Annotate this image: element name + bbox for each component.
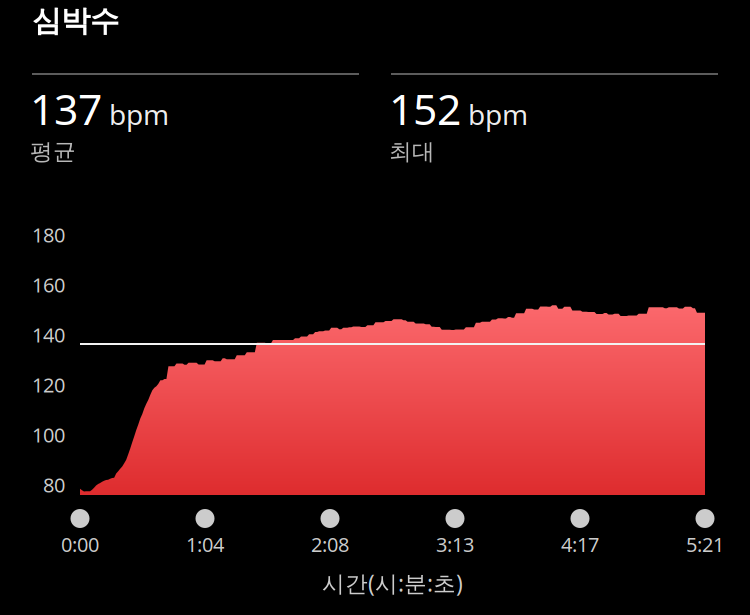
staticText: 0:00 [61,531,99,558]
button[interactable]: 152 [389,80,528,165]
staticText: 120 [32,371,65,398]
staticText: 2:08 [311,531,349,558]
staticText: 3:13 [436,531,474,558]
staticText: 5:21 [686,531,724,558]
staticText: 152 [389,80,461,137]
staticText: bpm [468,95,528,133]
staticText: 4:17 [561,531,599,558]
button[interactable]: 137 [30,80,169,165]
staticText: 180 [32,221,65,248]
staticText: 160 [32,271,65,298]
staticText: 시간(시:분:초) [322,568,463,598]
staticText: 최대 [389,138,435,165]
staticText: 심박수 [32,3,119,39]
staticText: 80 [43,471,65,498]
staticText: 140 [32,321,65,348]
staticText: 평균 [30,138,76,165]
staticText: 100 [32,421,65,448]
staticText: bpm [109,95,169,133]
staticText: 137 [30,80,102,137]
staticText: 1:04 [186,531,224,558]
